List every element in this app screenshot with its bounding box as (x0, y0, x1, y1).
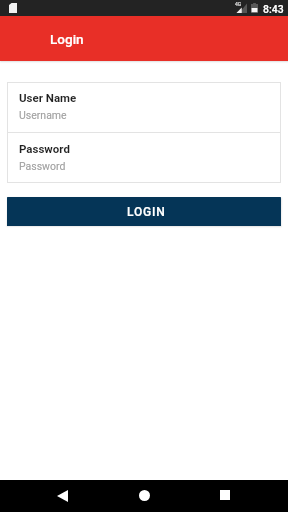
button[interactable]: User Name (7, 82, 281, 132)
staticText: 8:43 (263, 3, 284, 15)
button[interactable]: Back (46, 480, 78, 512)
button[interactable]: LOGIN (7, 197, 281, 226)
button[interactable]: Recent apps (209, 480, 241, 512)
staticText: Password (19, 142, 70, 155)
staticText: LOGIN (127, 205, 166, 219)
button[interactable]: Home (128, 480, 160, 512)
staticText: Login (50, 31, 84, 47)
staticText: Password (19, 160, 66, 172)
staticText: 4G (235, 1, 242, 7)
button[interactable]: Password (7, 133, 281, 183)
staticText: User Name (19, 91, 77, 104)
staticText: Username (19, 109, 67, 121)
